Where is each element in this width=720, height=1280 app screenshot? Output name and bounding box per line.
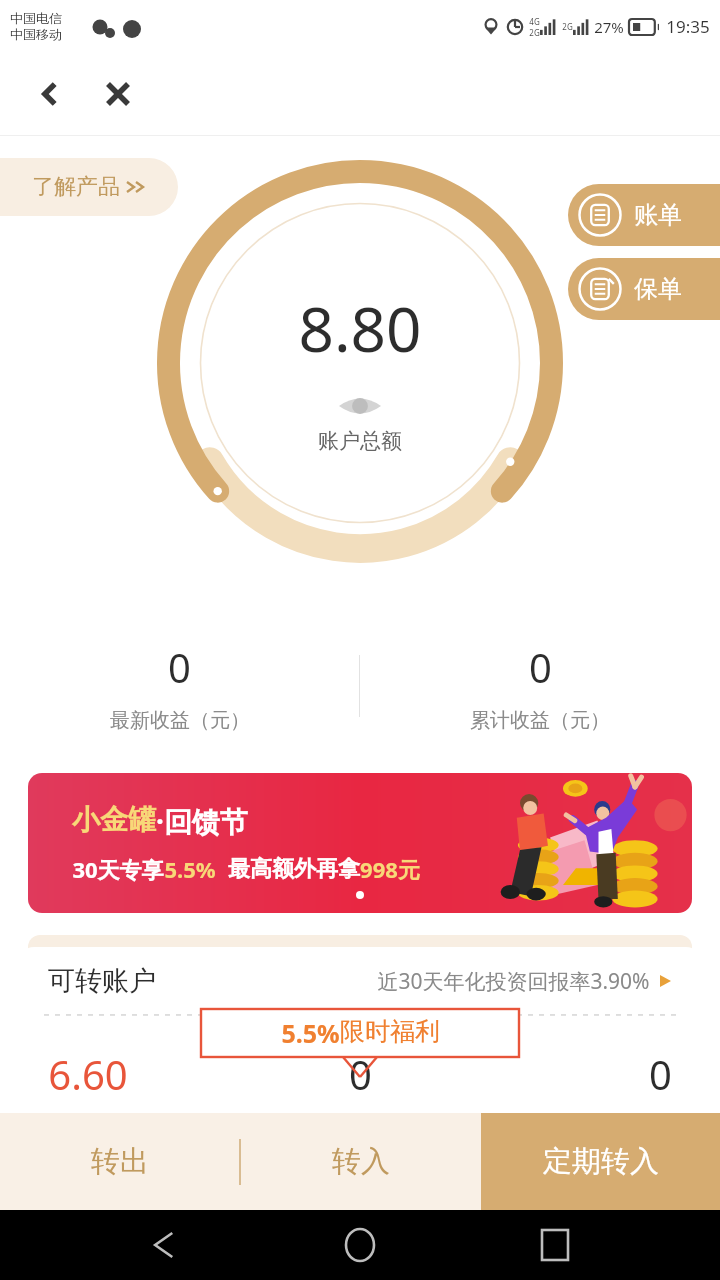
staticText: 27%: [594, 17, 624, 37]
button[interactable]: 保单: [568, 258, 720, 320]
staticText: 转出: [91, 1143, 149, 1180]
button[interactable]: 0: [0, 621, 359, 751]
staticText: 5.5%: [281, 1016, 340, 1050]
staticText: 转入: [332, 1143, 390, 1180]
staticText: 限时福利: [340, 1016, 440, 1047]
button[interactable]: 了解产品: [0, 158, 178, 216]
staticText: 0: [349, 1047, 372, 1101]
button[interactable]: 可转账户: [48, 947, 672, 1015]
button[interactable]: Close: [90, 66, 146, 122]
button[interactable]: 0: [360, 621, 720, 751]
staticText: 2G: [529, 27, 540, 38]
staticText: 6.60: [48, 1047, 128, 1101]
button[interactable]: Back: [135, 1215, 195, 1275]
staticText: ·回馈节: [156, 802, 248, 840]
staticText: 0: [529, 640, 552, 694]
staticText: 最新收益（元）: [110, 708, 250, 733]
staticText: 998元: [360, 854, 420, 884]
staticText: 最高额外再拿: [228, 855, 360, 883]
staticText: 5.5%: [164, 854, 216, 884]
staticText: 近30天年化投资回报率3.90%: [377, 967, 650, 996]
staticText: 19:35: [666, 15, 710, 38]
button[interactable]: 转入: [241, 1113, 481, 1210]
staticText: 定期转入: [543, 1143, 659, 1180]
button[interactable]: 小金罐: [28, 773, 692, 913]
staticText: 2G: [562, 21, 573, 32]
staticText: 小金罐: [72, 802, 156, 837]
button[interactable]: Back: [22, 66, 78, 122]
button[interactable]: Toggle amount visibility: [334, 392, 386, 420]
staticText: 账户总额: [318, 428, 402, 454]
staticText: 8.80: [298, 286, 422, 370]
staticText: 0: [168, 640, 191, 694]
staticText: 可转账户: [48, 964, 156, 998]
button[interactable]: 账单: [568, 184, 720, 246]
staticText: 了解产品: [32, 173, 120, 201]
button[interactable]: 定期转入: [481, 1113, 720, 1210]
button[interactable]: 转出: [0, 1113, 239, 1210]
staticText: 账单: [634, 200, 682, 230]
staticText: 累计收益（元）: [470, 708, 610, 733]
staticText: 保单: [634, 274, 682, 304]
button[interactable]: Home: [330, 1215, 390, 1275]
staticText: 中国移动: [10, 26, 62, 42]
button[interactable]: Recent apps: [525, 1215, 585, 1275]
staticText: 4G: [529, 16, 540, 27]
staticText: 0: [649, 1047, 672, 1101]
staticText: 中国电信: [10, 10, 62, 26]
staticText: 30天专享: [72, 854, 164, 884]
